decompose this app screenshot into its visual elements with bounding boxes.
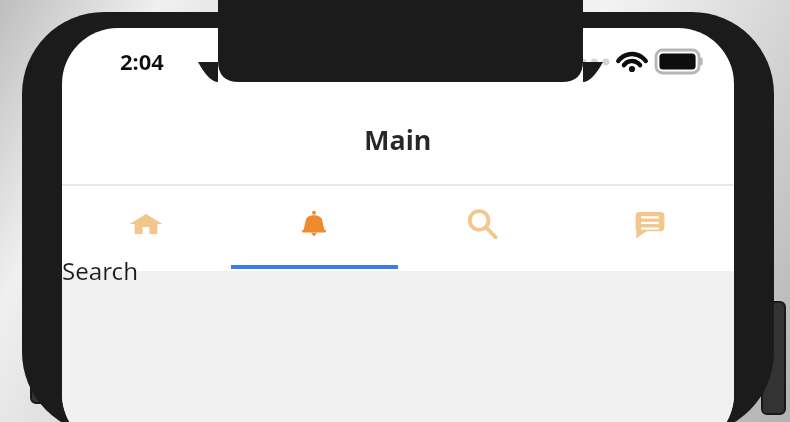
button[interactable]: Search <box>398 186 566 271</box>
staticText: 2:04 <box>120 46 164 76</box>
button[interactable]: Messages <box>566 186 734 271</box>
button[interactable]: Notifications <box>230 186 398 271</box>
staticText: Main <box>364 121 432 158</box>
staticText: Search <box>62 254 138 287</box>
button[interactable]: Home <box>62 186 230 271</box>
